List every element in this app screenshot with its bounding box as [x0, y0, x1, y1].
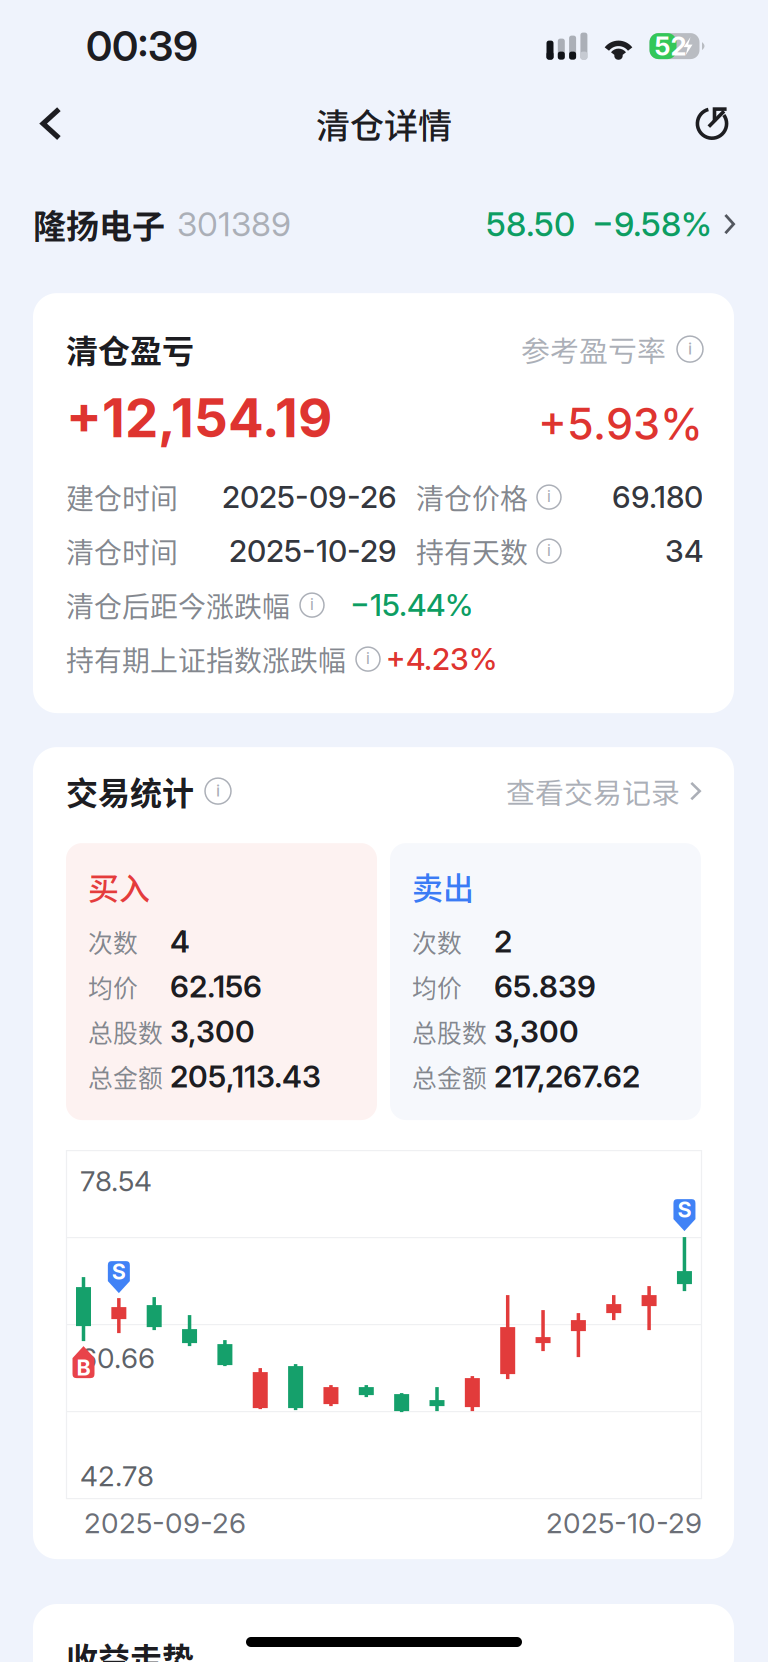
staticText: 2025-10-29 [229, 533, 397, 569]
staticText: 清仓后距今涨跌幅 [66, 585, 290, 625]
staticText: 隆扬电子 [33, 200, 165, 248]
staticText: S [112, 1258, 126, 1285]
staticText: 交易统计 [66, 768, 194, 814]
button[interactable]: 隆扬电子 [0, 155, 768, 293]
staticText: 2025-09-26 [84, 1506, 246, 1540]
staticText: 65.839 [494, 968, 596, 1005]
staticText: 买入 [88, 864, 150, 908]
staticText: 00:39 [86, 21, 198, 71]
staticText: 查看交易记录 [506, 770, 680, 812]
staticText: −15.44% [350, 587, 473, 623]
staticText: 205,113.43 [170, 1058, 321, 1095]
staticText: 62.156 [170, 968, 262, 1005]
staticText: B [76, 1354, 90, 1381]
staticText: 收益走势 [66, 1634, 194, 1662]
staticText: 次数 [412, 924, 462, 960]
button[interactable]: 返回 [15, 92, 87, 155]
button[interactable]: 查看交易记录 [506, 770, 701, 812]
staticText: +12,154.19 [66, 386, 332, 450]
staticText: 总股数 [412, 1014, 487, 1050]
staticText: i [216, 781, 220, 800]
staticText: 69.180 [612, 479, 703, 515]
staticText: 持有期上证指数涨跌幅 [66, 639, 346, 679]
staticText: 3,300 [170, 1013, 255, 1050]
staticText: i [547, 541, 551, 560]
staticText: 34 [665, 533, 703, 569]
staticText: 卖出 [412, 864, 474, 908]
staticText: 清仓盈亏 [66, 326, 194, 372]
staticText: 2025-09-26 [222, 479, 397, 515]
staticText: +4.23% [386, 641, 497, 677]
staticText: 清仓时间 [66, 531, 178, 571]
staticText: 2 [494, 923, 512, 960]
staticText: 3,300 [494, 1013, 579, 1050]
staticText: 总股数 [88, 1014, 163, 1050]
staticText: 均价 [412, 969, 462, 1005]
staticText: i [366, 649, 370, 668]
staticText: 52 [654, 30, 686, 62]
staticText: 次数 [88, 924, 138, 960]
staticText: 301389 [177, 204, 291, 244]
staticText: 总金额 [412, 1059, 487, 1095]
staticText: 4 [170, 923, 190, 960]
staticText: 60.66 [80, 1341, 155, 1375]
staticText: −9.58% [592, 204, 712, 244]
staticText: 建仓时间 [66, 477, 178, 517]
staticText: 58.50 [486, 204, 575, 244]
staticText: 清仓价格 [416, 477, 528, 517]
staticText: 清仓详情 [316, 99, 452, 148]
staticText: 217,267.62 [494, 1058, 640, 1095]
button[interactable]: 分享 [676, 92, 748, 155]
staticText: 总金额 [88, 1059, 163, 1095]
staticText: 2025-10-29 [546, 1506, 702, 1540]
staticText: S [677, 1196, 691, 1223]
staticText: +5.93% [538, 398, 703, 450]
staticText: 42.78 [80, 1459, 154, 1493]
staticText: i [310, 595, 314, 614]
staticText: i [547, 487, 551, 506]
staticText: 参考盈亏率 [521, 328, 666, 370]
staticText: 持有天数 [416, 531, 528, 571]
staticText: i [688, 339, 692, 358]
staticText: 78.54 [80, 1164, 152, 1198]
staticText: 均价 [88, 969, 138, 1005]
